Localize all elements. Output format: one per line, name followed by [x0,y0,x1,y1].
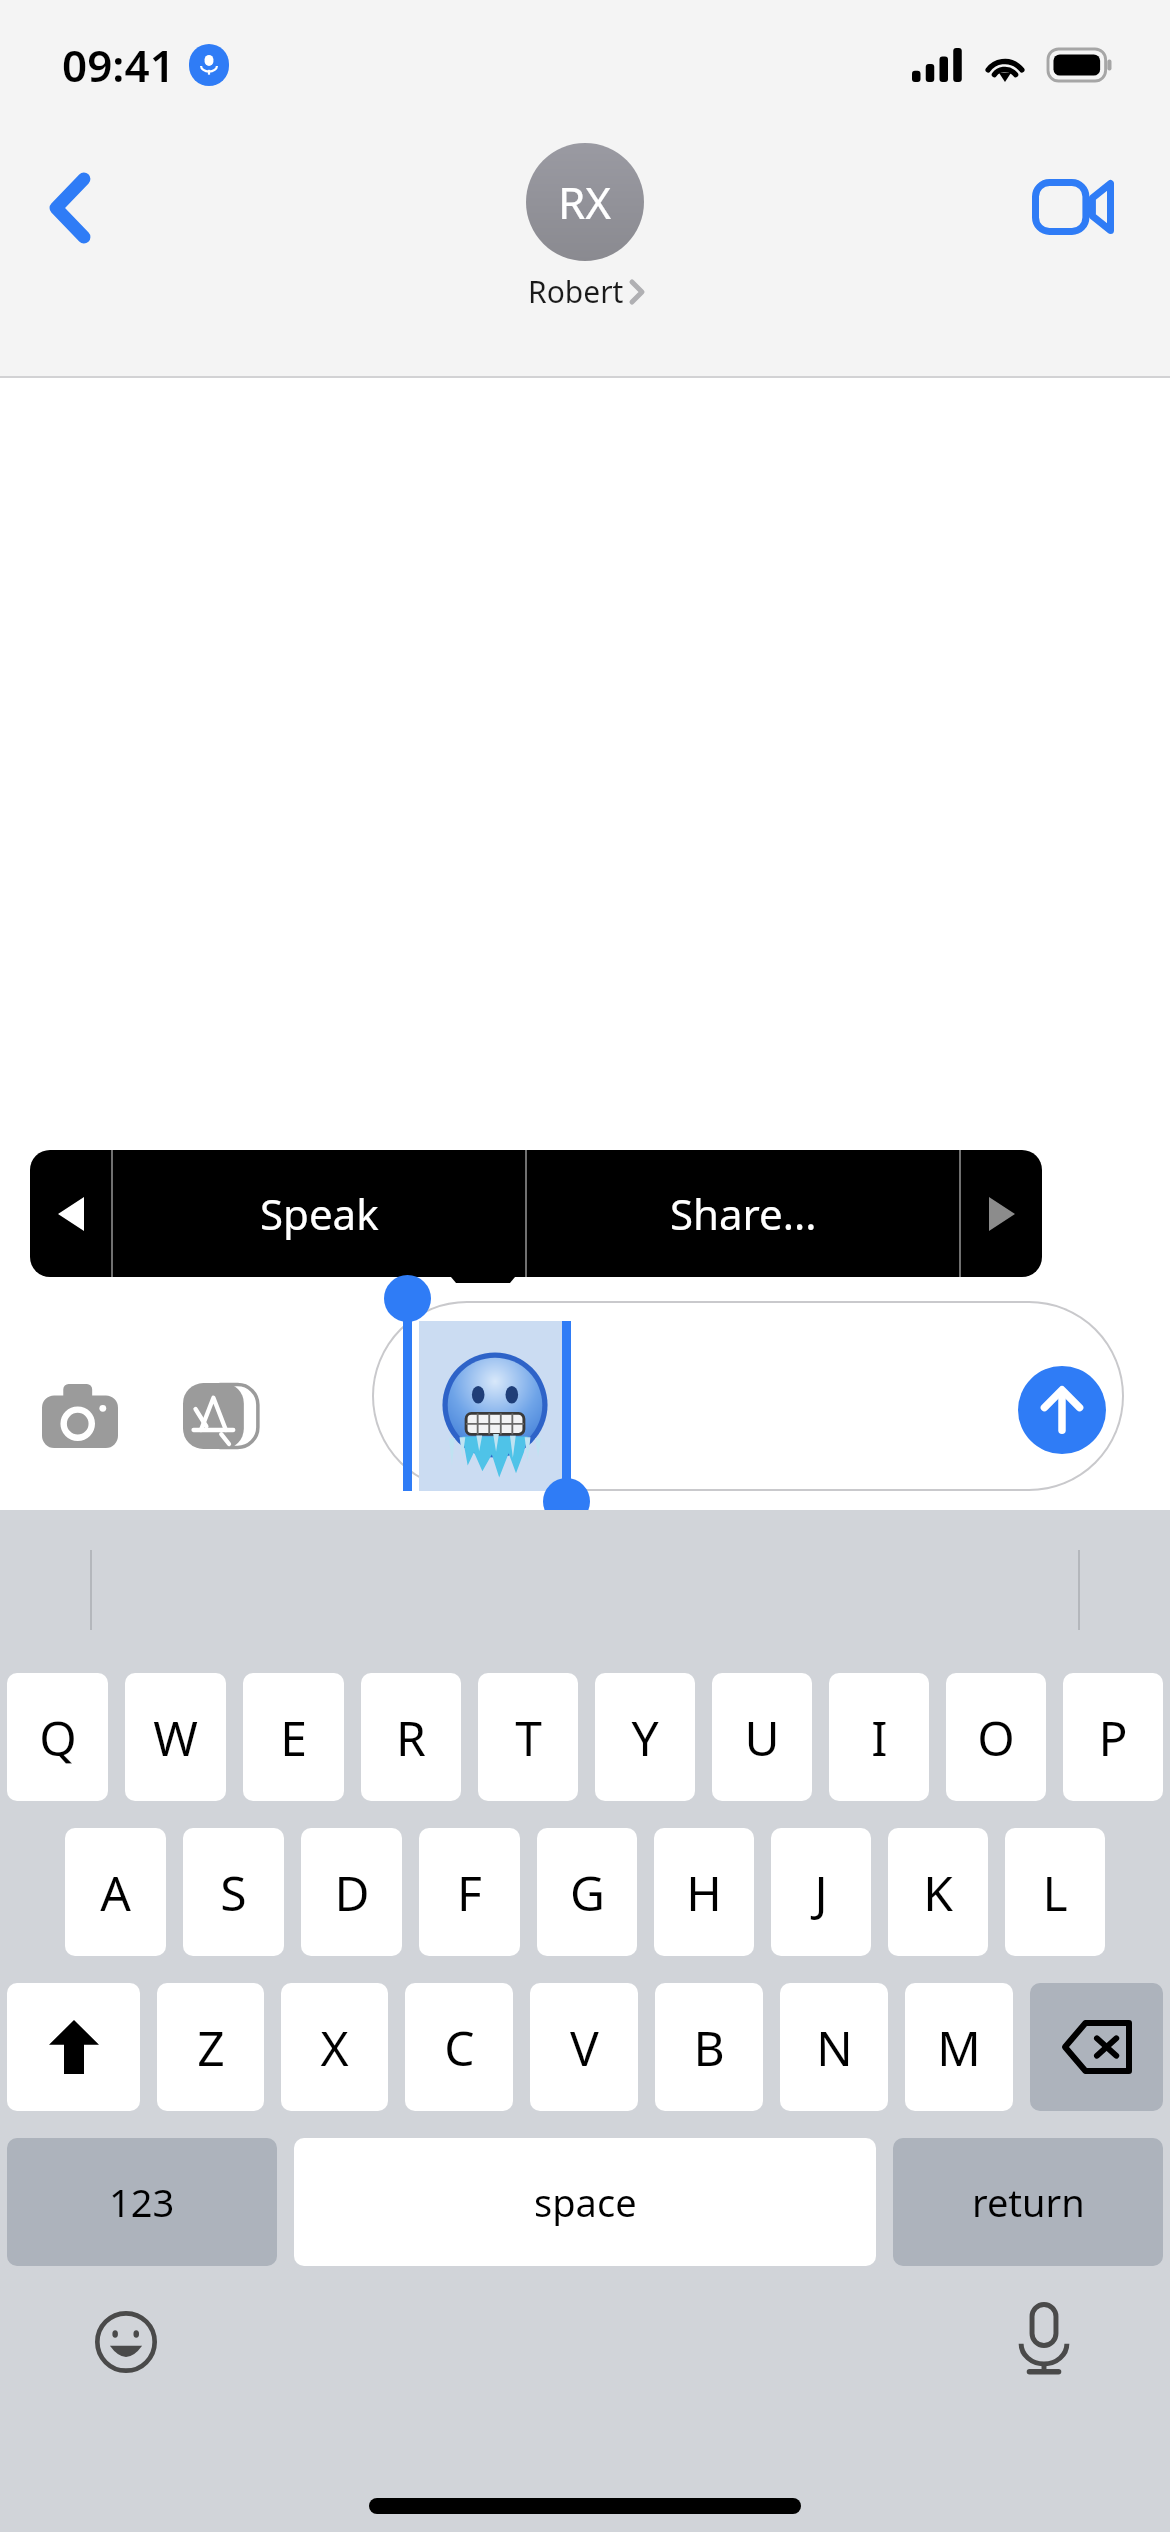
staticText: J [814,1860,828,1925]
staticText: 123 [109,2176,175,2228]
staticText: O [977,1705,1015,1770]
staticText: F [457,1860,482,1925]
staticText: Share... [670,1185,817,1242]
staticText: M [937,2015,981,2080]
button[interactable]: R [361,1673,461,1801]
button[interactable]: G [537,1828,637,1956]
staticText: C [444,2015,475,2080]
button[interactable] [372,1301,1124,1491]
button[interactable]: RX [526,143,644,312]
staticText: K [923,1860,953,1925]
button[interactable]: N [780,1983,888,2111]
button[interactable]: Y [595,1673,695,1801]
button[interactable]: space [294,2138,876,2266]
button[interactable]: return [893,2138,1163,2266]
button[interactable]: Back [26,165,116,251]
button[interactable]: I [829,1673,929,1801]
staticText: N [816,2015,853,2080]
staticText: Z [197,2015,225,2080]
staticText: Speak [260,1185,379,1242]
button[interactable]: H [654,1828,754,1956]
staticText: 09:41 [62,35,175,95]
button[interactable]: Q [7,1673,108,1801]
button[interactable]: V [530,1983,638,2111]
button[interactable]: S [183,1828,284,1956]
button[interactable]: Send [1018,1366,1106,1454]
button[interactable]: B [655,1983,763,2111]
button[interactable]: Next [961,1150,1042,1277]
staticText: I [871,1705,888,1770]
button[interactable]: D [301,1828,402,1956]
button[interactable]: Z [157,1983,264,2111]
staticText: X [320,2015,349,2080]
staticText: Q [39,1705,77,1770]
staticText: RX [558,172,612,232]
button[interactable]: 123 [7,2138,277,2266]
staticText: G [570,1860,605,1925]
staticText: U [744,1705,780,1770]
staticText: P [1098,1705,1128,1770]
staticText: S [220,1860,247,1925]
staticText: return [972,2176,1085,2228]
staticText: Y [631,1705,659,1770]
staticText: Robert [528,271,624,312]
button[interactable]: FaceTime video call [1018,161,1128,253]
button[interactable]: X [281,1983,388,2111]
button[interactable]: K [888,1828,988,1956]
staticText: E [280,1705,307,1770]
staticText: B [693,2015,725,2080]
button[interactable]: Camera [30,1371,130,1461]
button[interactable]: E [243,1673,344,1801]
button[interactable]: Shift [7,1983,140,2111]
staticText: H [686,1860,722,1925]
button[interactable]: M [905,1983,1013,2111]
button[interactable]: App Store [172,1371,272,1461]
button[interactable]: C [405,1983,513,2111]
button[interactable]: L [1005,1828,1105,1956]
button[interactable]: A [65,1828,166,1956]
button[interactable]: J [771,1828,871,1956]
staticText: V [570,2015,599,2080]
button[interactable]: Share... [527,1150,959,1277]
staticText: A [100,1860,131,1925]
button[interactable]: Backspace [1030,1983,1163,2111]
button[interactable]: F [419,1828,520,1956]
button[interactable]: Speak [113,1150,525,1277]
staticText: R [396,1705,426,1770]
button[interactable]: P [1063,1673,1163,1801]
staticText: T [515,1705,542,1770]
button[interactable]: T [478,1673,578,1801]
button[interactable]: U [712,1673,812,1801]
button[interactable]: O [946,1673,1046,1801]
button[interactable]: Previous [30,1150,111,1277]
staticText: L [1042,1860,1068,1925]
staticText: W [153,1705,198,1770]
button[interactable]: W [125,1673,226,1801]
button[interactable]: Emoji keyboard [78,2294,174,2390]
staticText: space [534,2176,637,2228]
button[interactable]: Dictation [996,2290,1092,2386]
staticText: D [334,1860,370,1925]
